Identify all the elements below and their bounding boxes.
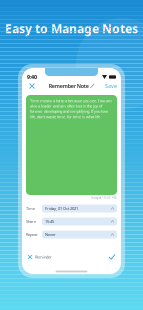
staticText: 9:40 xyxy=(27,73,37,81)
button[interactable]: Share xyxy=(26,215,117,228)
staticText: Time means a lot to a because you see. I… xyxy=(30,98,112,119)
staticText: Never xyxy=(45,232,56,237)
staticText: Repeat xyxy=(26,232,37,237)
staticText: Reminder xyxy=(35,254,52,260)
button[interactable]: Time xyxy=(26,202,117,215)
button[interactable]: Save xyxy=(105,80,117,91)
staticText: Remember Note xyxy=(49,82,89,90)
button[interactable]: Confirm xyxy=(109,254,115,259)
button[interactable]: Repeat xyxy=(26,228,117,241)
staticText: Friday, 01 Oct 2021 xyxy=(45,206,78,211)
staticText: 15:45 xyxy=(45,219,54,224)
staticText: Easy to Manage Notes xyxy=(5,20,138,36)
button[interactable]: Reminder xyxy=(28,254,52,260)
button[interactable]: Close xyxy=(26,80,38,91)
staticText: Share xyxy=(26,219,36,224)
staticText: Time xyxy=(26,206,35,211)
staticText: Save xyxy=(105,82,117,90)
staticText: Today at 10:45 PM xyxy=(91,196,116,200)
